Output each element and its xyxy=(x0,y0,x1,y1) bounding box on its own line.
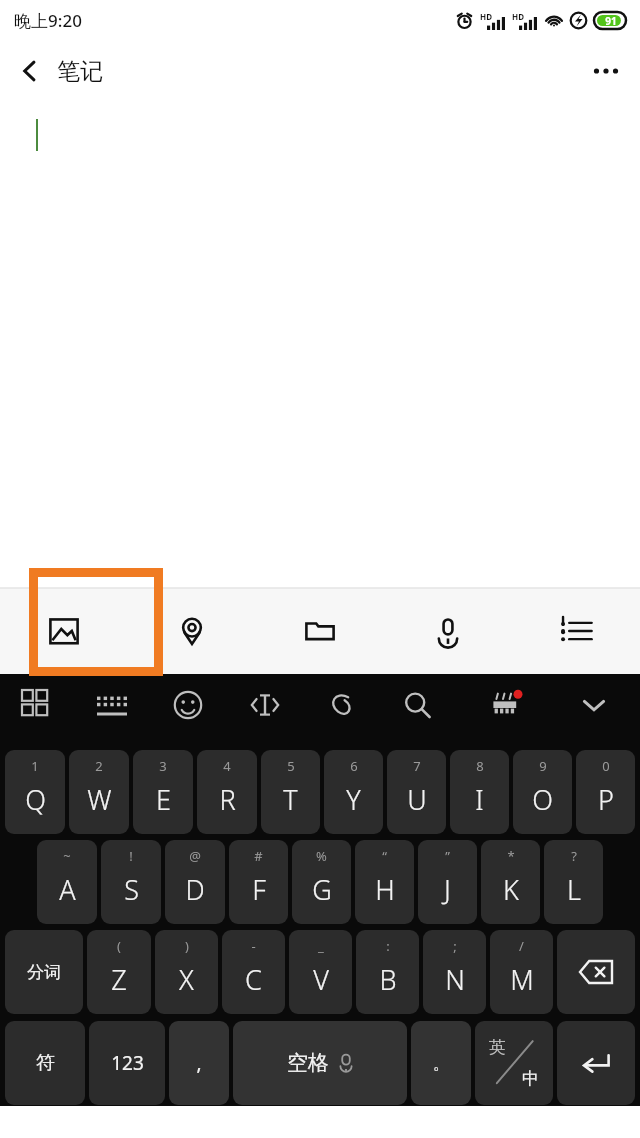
button[interactable]: Checklist xyxy=(512,588,640,674)
button[interactable]: Insert image xyxy=(0,588,128,674)
staticText: # xyxy=(254,847,263,865)
button[interactable]: 1 xyxy=(5,750,65,834)
staticText: ( xyxy=(117,937,121,955)
button[interactable]: Emoji xyxy=(162,679,214,731)
button[interactable]: ” xyxy=(418,840,477,924)
staticText: 123 xyxy=(111,1050,144,1076)
button[interactable]: Enter xyxy=(557,1021,635,1105)
button[interactable]: * xyxy=(481,840,540,924)
button[interactable]: More options xyxy=(580,45,632,97)
button[interactable]: : xyxy=(356,930,419,1014)
button[interactable]: 。 xyxy=(411,1021,471,1105)
button[interactable]: Search xyxy=(391,679,443,731)
staticText: M xyxy=(510,961,534,998)
staticText: U xyxy=(407,781,427,818)
staticText: J xyxy=(444,871,451,908)
button[interactable]: 4 xyxy=(197,750,257,834)
button[interactable]: Menu xyxy=(11,679,63,731)
staticText: - xyxy=(251,937,256,955)
staticText: 7 xyxy=(413,757,421,775)
button[interactable]: ? xyxy=(544,840,603,924)
button[interactable]: Folder xyxy=(256,588,384,674)
button[interactable]: # xyxy=(229,840,288,924)
staticText: L xyxy=(567,871,581,908)
staticText: _ xyxy=(318,937,324,955)
staticText: HD xyxy=(512,11,524,22)
button[interactable]: ( xyxy=(87,930,151,1014)
staticText: 0 xyxy=(602,757,610,775)
staticText: 6 xyxy=(350,757,358,775)
button[interactable]: ~ xyxy=(37,840,97,924)
button[interactable]: “ xyxy=(355,840,414,924)
button[interactable]: 3 xyxy=(133,750,193,834)
button[interactable]: - xyxy=(222,930,285,1014)
staticText: G xyxy=(312,871,332,908)
staticText: 中 xyxy=(522,1068,539,1089)
staticText: ~ xyxy=(63,847,71,865)
staticText: X xyxy=(179,961,194,998)
staticText: C xyxy=(245,961,262,998)
button[interactable]: 9 xyxy=(513,750,572,834)
button[interactable]: 空格 xyxy=(233,1021,407,1105)
button[interactable]: Clipboard xyxy=(315,679,367,731)
staticText: 空格 xyxy=(287,1050,329,1076)
staticText: N xyxy=(445,961,465,998)
staticText: S xyxy=(124,871,139,908)
staticText: @ xyxy=(189,847,201,865)
button[interactable]: 分词 xyxy=(5,930,83,1014)
staticText: P xyxy=(598,781,614,818)
staticText: A xyxy=(59,871,76,908)
staticText: 符 xyxy=(36,1051,55,1075)
staticText: E xyxy=(156,781,171,818)
staticText: HD xyxy=(480,11,492,22)
staticText: ! xyxy=(129,847,133,865)
button[interactable]: 0 xyxy=(576,750,635,834)
button[interactable]: Hide keyboard xyxy=(568,679,620,731)
button[interactable]: ! xyxy=(101,840,161,924)
staticText: H xyxy=(375,871,395,908)
staticText: R xyxy=(219,781,236,818)
button[interactable]: Cursor control xyxy=(239,679,291,731)
staticText: 3 xyxy=(159,757,167,775)
button[interactable]: Backspace xyxy=(557,930,635,1014)
staticText: , xyxy=(196,1050,202,1076)
button[interactable]: 8 xyxy=(450,750,509,834)
button[interactable]: Back xyxy=(4,45,56,97)
button[interactable]: Location xyxy=(128,588,256,674)
staticText: D xyxy=(185,871,205,908)
staticText: % xyxy=(316,847,327,865)
button[interactable]: Voice note xyxy=(384,588,512,674)
staticText: 2 xyxy=(95,757,103,775)
button[interactable]: _ xyxy=(289,930,352,1014)
button[interactable]: ) xyxy=(155,930,218,1014)
staticText: W xyxy=(87,781,112,818)
staticText: 。 xyxy=(433,1053,450,1074)
staticText: 晚上9:20 xyxy=(14,9,82,32)
staticText: 91 xyxy=(605,14,617,28)
button[interactable]: Keyboard layout xyxy=(86,679,138,731)
staticText: : xyxy=(386,937,390,955)
staticText: T xyxy=(283,781,298,818)
button[interactable]: 7 xyxy=(387,750,446,834)
staticText: K xyxy=(503,871,519,908)
staticText: 8 xyxy=(476,757,484,775)
button[interactable]: 2 xyxy=(69,750,129,834)
staticText: I xyxy=(475,781,484,818)
button[interactable]: 123 xyxy=(89,1021,165,1105)
staticText: Z xyxy=(111,961,127,998)
button[interactable]: / xyxy=(490,930,553,1014)
staticText: 分词 xyxy=(27,962,61,983)
button[interactable]: @ xyxy=(165,840,225,924)
button[interactable]: , xyxy=(169,1021,229,1105)
button[interactable]: ; xyxy=(423,930,486,1014)
button[interactable]: Theme xyxy=(480,679,532,731)
button[interactable]: 符 xyxy=(5,1021,85,1105)
button[interactable]: Switch English Chinese xyxy=(475,1021,553,1105)
button[interactable]: 5 xyxy=(261,750,320,834)
button[interactable]: % xyxy=(292,840,351,924)
staticText: O xyxy=(532,781,553,818)
staticText: ? xyxy=(571,847,577,865)
button[interactable]: 6 xyxy=(324,750,383,834)
staticText: 笔记 xyxy=(57,57,103,86)
staticText: B xyxy=(379,961,397,998)
